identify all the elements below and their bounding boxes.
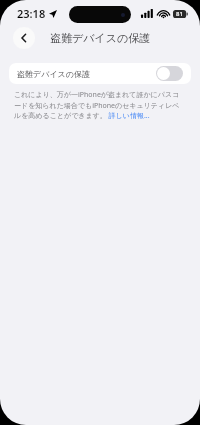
button[interactable]: 戻る	[13, 27, 35, 49]
staticText: 23:18	[17, 6, 46, 21]
button[interactable]: 盗難デバイスの保護をオン	[156, 66, 183, 81]
staticText: 盗難デバイスの保護	[50, 31, 151, 45]
staticText: 盗難デバイスの保護	[17, 69, 90, 79]
button[interactable]: これにより、万が一iPhoneが盗まれて誰かにパスコードを知られた場合でもiPh…	[14, 90, 186, 120]
button[interactable]: 盗難デバイスの保護	[9, 63, 191, 84]
staticText: 81	[176, 10, 183, 18]
